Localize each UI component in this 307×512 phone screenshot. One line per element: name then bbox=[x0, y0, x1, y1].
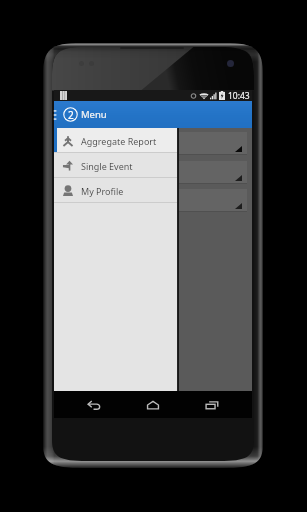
button[interactable]: Recent apps bbox=[186, 391, 252, 418]
button[interactable]: Open navigation drawer bbox=[54, 101, 62, 128]
button[interactable] bbox=[58, 189, 247, 212]
staticText: 10:43 bbox=[228, 90, 250, 101]
staticText: Single Event bbox=[81, 160, 133, 172]
button[interactable]: Back bbox=[54, 391, 120, 418]
button[interactable]: Home bbox=[120, 391, 186, 418]
staticText: 2 bbox=[68, 108, 74, 122]
button[interactable] bbox=[58, 161, 247, 184]
button[interactable]: My Profile bbox=[54, 178, 179, 203]
staticText: My Profile bbox=[81, 185, 124, 197]
staticText: Aggregate Report bbox=[81, 135, 157, 147]
staticText: Menu bbox=[81, 108, 107, 121]
button[interactable]: Single Event bbox=[54, 153, 179, 178]
button[interactable]: Aggregate Report bbox=[54, 128, 179, 153]
button[interactable] bbox=[58, 132, 247, 155]
